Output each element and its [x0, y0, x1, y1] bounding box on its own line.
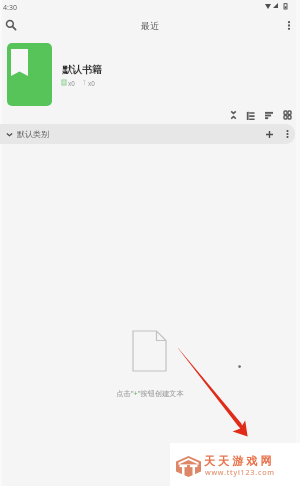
button[interactable]: List view — [247, 112, 254, 120]
button[interactable]: 默认书籍 — [0, 40, 300, 106]
button[interactable]: Search — [0, 14, 22, 36]
staticText: www.ttyl123.com — [205, 467, 275, 477]
button[interactable]: More options — [278, 14, 300, 36]
button[interactable]: Grid view — [284, 111, 291, 119]
staticText: 4:30 — [3, 3, 17, 13]
staticText: 天天游戏网 — [204, 454, 275, 468]
button[interactable]: Sort — [265, 112, 273, 119]
button[interactable]: Collapse — [231, 111, 236, 119]
staticText: x0 — [68, 79, 75, 87]
button[interactable]: 默认类别 — [0, 124, 295, 144]
staticText: 默认类别 — [17, 129, 49, 139]
button[interactable]: Category options — [279, 126, 295, 142]
staticText: 默认书籍 — [62, 63, 102, 76]
button[interactable]: Add — [261, 126, 277, 142]
staticText: 点击"+"按钮创建文本 — [0, 388, 300, 398]
staticText: 最近 — [141, 20, 159, 31]
staticText: x0 — [88, 79, 95, 87]
